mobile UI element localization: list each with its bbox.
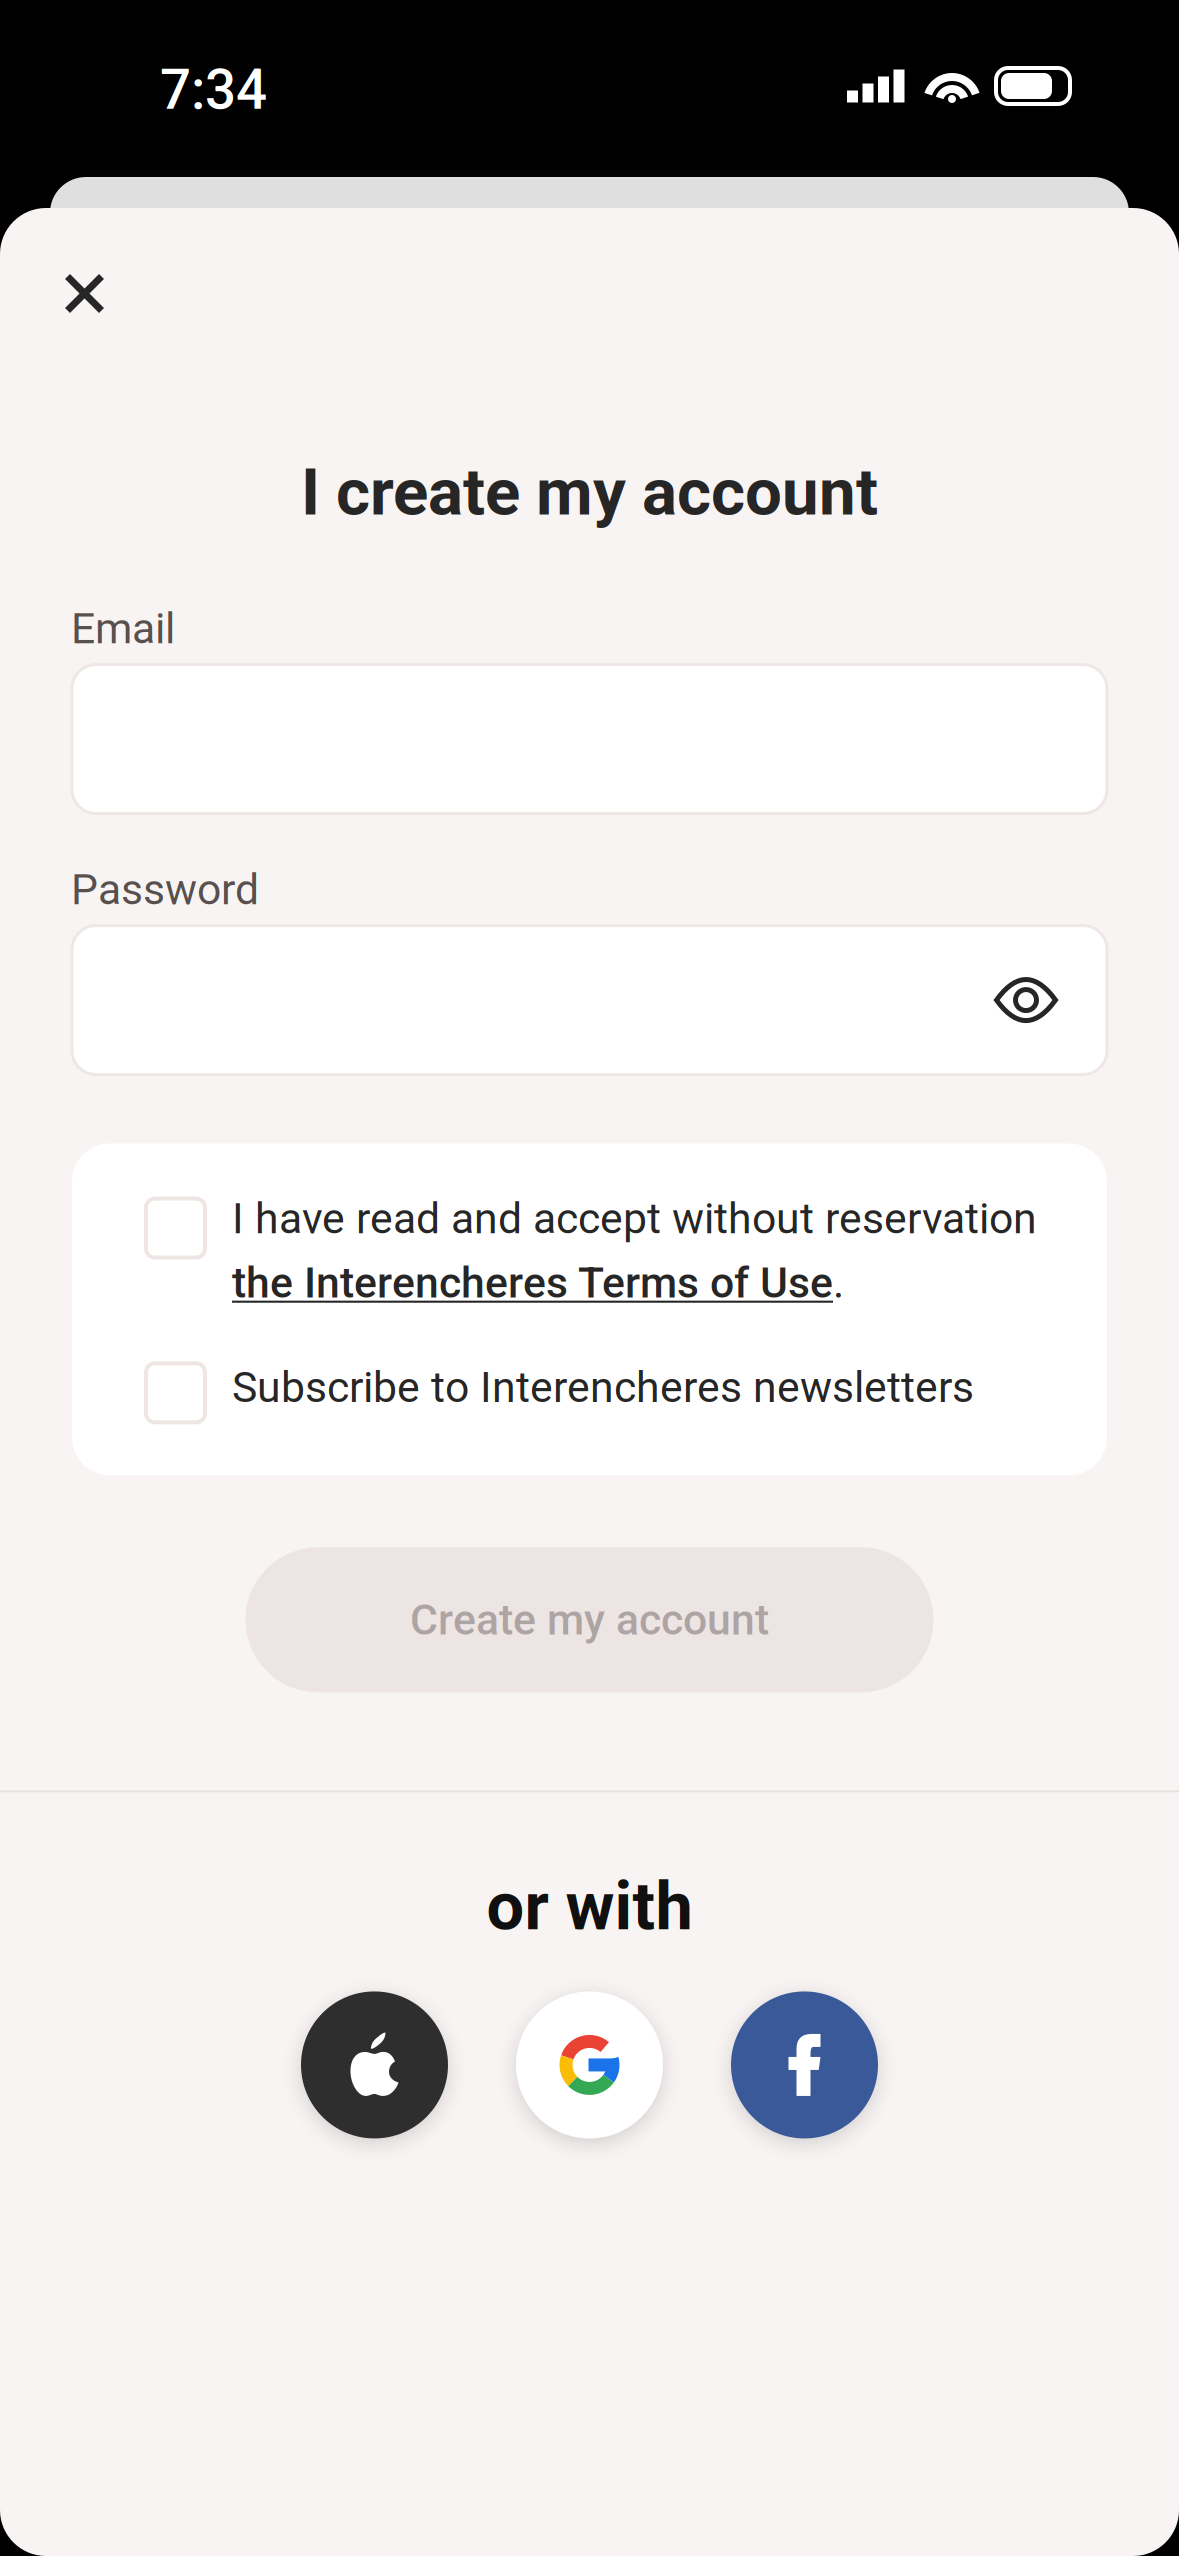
button[interactable]: Create my account bbox=[245, 1547, 933, 1692]
button[interactable]: Continue with Apple bbox=[301, 1991, 448, 2138]
button[interactable]: Continue with Google bbox=[516, 1991, 663, 2138]
staticText: I create my account bbox=[301, 454, 878, 531]
staticText: I have read and accept without reservati… bbox=[232, 1194, 1037, 1244]
button[interactable]: Subscribe to Interencheres newsletters bbox=[72, 1307, 1107, 1475]
staticText: Email bbox=[71, 604, 175, 654]
button[interactable]: Continue with Facebook bbox=[731, 1991, 878, 2138]
staticText: Subscribe to Interencheres newsletters bbox=[232, 1362, 974, 1412]
button[interactable]: I have read and accept without reservati… bbox=[72, 1144, 1107, 1307]
staticText: 7:34 bbox=[160, 58, 267, 122]
staticText: or with bbox=[486, 1867, 692, 1945]
staticText: Password bbox=[71, 865, 259, 915]
staticText: Create my account bbox=[410, 1595, 769, 1645]
staticText: the Interencheres Terms of Use. bbox=[232, 1259, 844, 1307]
button[interactable]: Close bbox=[0, 251, 145, 336]
button[interactable]: Show password bbox=[966, 948, 1107, 1052]
